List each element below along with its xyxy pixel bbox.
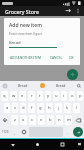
button[interactable]: n <box>56 115 63 125</box>
staticText: d <box>22 105 25 111</box>
button[interactable]: p <box>77 91 83 101</box>
staticText: . <box>67 130 69 135</box>
staticText: w <box>12 93 16 99</box>
button[interactable]: Add item <box>67 69 78 80</box>
staticText: Add new item <box>9 22 42 29</box>
button[interactable]: y <box>45 91 51 101</box>
staticText: a <box>6 105 9 111</box>
staticText: h <box>48 105 51 111</box>
staticText: b <box>49 117 52 123</box>
button[interactable]: Comma <box>12 127 18 137</box>
staticText: p <box>79 93 82 99</box>
staticText: l <box>76 105 78 111</box>
button[interactable]: u <box>53 91 59 101</box>
staticText: i <box>63 93 65 99</box>
staticText: Bread <box>56 83 66 88</box>
staticText: j <box>58 105 60 111</box>
button[interactable]: g <box>37 103 44 113</box>
button[interactable]: o <box>69 91 75 101</box>
staticText: y <box>47 93 50 99</box>
staticText: c <box>31 117 34 123</box>
staticText: Bread <box>18 83 28 88</box>
button[interactable]: Menu <box>73 6 83 16</box>
button[interactable]: ADD ANOTHER ITEM <box>9 54 42 62</box>
button[interactable]: f <box>28 103 35 113</box>
button[interactable]: j <box>55 103 62 113</box>
staticText: Grocery Store <box>5 8 39 15</box>
staticText: ?123 <box>2 130 9 134</box>
staticText: z <box>14 117 16 123</box>
button[interactable]: CANCEL <box>48 54 65 62</box>
button[interactable]: d <box>20 103 26 113</box>
staticText: x <box>22 117 25 123</box>
staticText: n <box>58 117 61 123</box>
button[interactable]: a <box>4 103 10 113</box>
button[interactable]: z <box>11 115 18 125</box>
button[interactable]: m <box>65 115 72 125</box>
button[interactable]: Expand <box>0 81 10 90</box>
button[interactable]: Bread <box>10 81 36 90</box>
staticText: CANCEL <box>50 56 63 60</box>
button[interactable]: Search <box>74 81 84 90</box>
button[interactable]: v <box>38 115 45 125</box>
button[interactable]: ?123 <box>1 127 10 137</box>
staticText: ADD ANOTHER ITEM <box>10 56 41 60</box>
button[interactable]: i <box>61 91 67 101</box>
button[interactable]: e <box>19 91 26 101</box>
staticText: s <box>14 105 17 111</box>
button[interactable]: Period <box>65 127 71 137</box>
button[interactable]: Keyboard indicator <box>75 139 84 150</box>
button[interactable]: OK <box>67 54 76 62</box>
button[interactable]: Bread <box>48 81 74 90</box>
staticText: Enter new item figure <box>9 31 43 35</box>
button[interactable]: Emoji <box>36 81 48 90</box>
staticText: , <box>14 130 16 135</box>
staticText: m <box>67 117 71 123</box>
button[interactable]: w <box>10 91 17 101</box>
button[interactable]: x <box>20 115 27 125</box>
button[interactable]: h <box>46 103 53 113</box>
button[interactable]: q <box>1 91 8 101</box>
button[interactable]: s <box>12 103 18 113</box>
staticText: k <box>66 105 69 111</box>
button[interactable]: l <box>73 103 80 113</box>
button[interactable]: b <box>47 115 54 125</box>
staticText: v <box>40 117 43 123</box>
button[interactable]: More options <box>63 6 73 16</box>
staticText: t <box>39 93 41 99</box>
staticText: OK <box>69 56 74 60</box>
button[interactable]: Backspace <box>74 115 83 125</box>
button[interactable]: c <box>29 115 36 125</box>
staticText: f <box>31 105 33 111</box>
button[interactable]: r <box>28 91 35 101</box>
button[interactable]: t <box>37 91 43 101</box>
staticText: Bread <box>9 40 21 46</box>
staticText: e <box>21 93 24 99</box>
staticText: o <box>71 93 74 99</box>
button[interactable]: Home <box>25 139 50 150</box>
staticText: q <box>3 93 6 99</box>
button[interactable]: Shift <box>1 115 9 125</box>
button[interactable]: k <box>64 103 71 113</box>
staticText: r <box>31 93 33 99</box>
staticText: u <box>55 93 58 99</box>
button[interactable]: Recents <box>50 139 75 150</box>
staticText: g <box>39 105 42 111</box>
button[interactable]: Voice input <box>20 127 27 137</box>
button[interactable]: Enter <box>73 127 83 137</box>
button[interactable]: Back <box>0 139 25 150</box>
